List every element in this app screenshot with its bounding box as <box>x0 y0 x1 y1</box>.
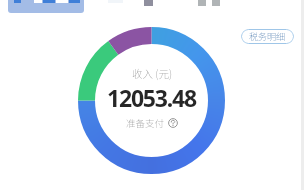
button[interactable]: 税务明细 <box>241 29 294 44</box>
staticText: 税务明细 <box>249 30 286 43</box>
staticText: 收入 (元) <box>132 66 173 81</box>
staticText: 准备支付 <box>126 116 165 130</box>
button[interactable]: Help <box>168 118 178 128</box>
button[interactable]: Chart <box>8 0 84 13</box>
staticText: 12053.48 <box>107 82 196 113</box>
